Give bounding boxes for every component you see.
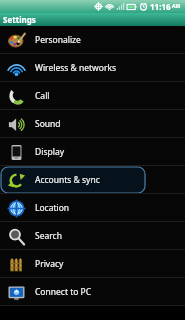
button[interactable]: Display (0, 138, 185, 166)
staticText: Sound (35, 118, 61, 130)
staticText: Connect to PC (35, 286, 92, 298)
button[interactable]: Personalize (0, 26, 185, 54)
staticText: Accounts & sync (35, 174, 100, 186)
staticText: Search (35, 230, 62, 242)
staticText: AM (172, 3, 181, 10)
staticText: Privacy (35, 258, 64, 270)
staticText: 11:16 (150, 1, 171, 12)
button[interactable]: Connect to PC (0, 278, 185, 306)
button[interactable]: Location (0, 194, 185, 222)
staticText: Personalize (35, 34, 81, 46)
staticText: Display (35, 146, 64, 158)
button[interactable]: Call (0, 82, 185, 110)
staticText: Settings (3, 14, 36, 25)
button[interactable]: Wireless & networks (0, 54, 185, 82)
button[interactable]: Sound (0, 110, 185, 138)
button[interactable]: Accounts & sync (0, 166, 185, 194)
button[interactable]: Search (0, 222, 185, 250)
button[interactable]: Privacy (0, 250, 185, 278)
staticText: Wireless & networks (35, 62, 117, 74)
staticText: Location (35, 202, 70, 214)
staticText: Call (35, 90, 50, 102)
